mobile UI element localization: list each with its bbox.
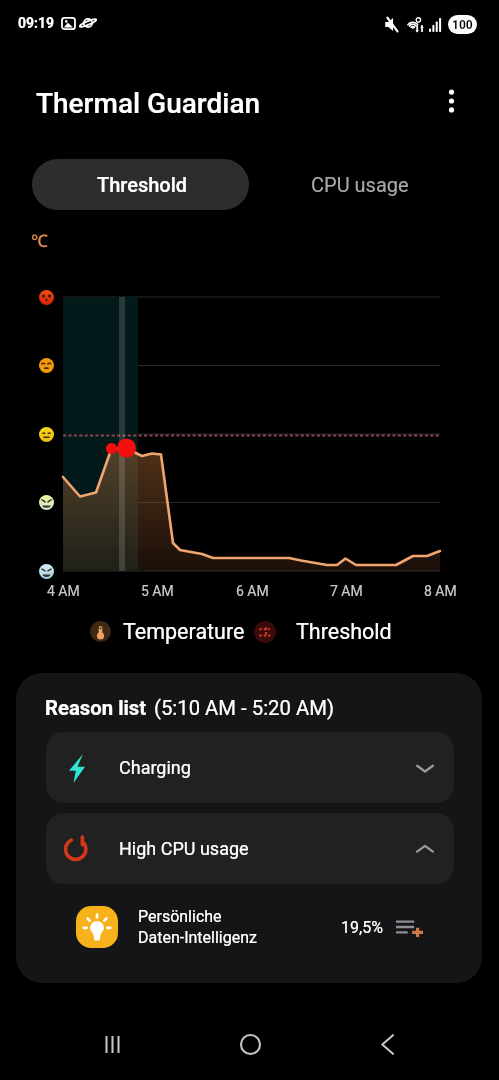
button[interactable]: Charging bbox=[46, 732, 454, 803]
staticText: CPU usage bbox=[311, 173, 409, 196]
staticText: Reason list bbox=[45, 696, 147, 720]
button[interactable]: CPU usage bbox=[251, 159, 468, 210]
button[interactable]: Persönliche bbox=[76, 899, 422, 955]
staticText: Temperature bbox=[123, 619, 245, 644]
staticText: ℃ bbox=[31, 229, 48, 252]
staticText: Persönliche bbox=[138, 907, 222, 926]
staticText: 5 AM bbox=[141, 583, 174, 599]
staticText: 4 AM bbox=[47, 583, 80, 599]
staticText: 7 AM bbox=[330, 583, 363, 599]
staticText: Daten-Intelligenz bbox=[138, 928, 257, 947]
staticText: (5:10 AM - 5:20 AM) bbox=[154, 696, 334, 720]
button[interactable]: High CPU usage bbox=[46, 813, 454, 884]
button[interactable]: Threshold bbox=[32, 159, 249, 210]
button[interactable]: Back bbox=[362, 1019, 412, 1069]
staticText: 6 AM bbox=[236, 583, 269, 599]
button[interactable]: Home bbox=[225, 1019, 275, 1069]
button[interactable]: More options bbox=[433, 83, 469, 119]
staticText: High CPU usage bbox=[119, 838, 249, 859]
staticText: Charging bbox=[119, 757, 191, 778]
button[interactable]: Recents bbox=[87, 1019, 137, 1069]
staticText: 8 AM bbox=[424, 583, 457, 599]
staticText: 19,5% bbox=[341, 918, 383, 937]
staticText: 100 bbox=[452, 18, 473, 32]
staticText: 09:19 bbox=[18, 15, 55, 31]
staticText: Threshold bbox=[296, 619, 392, 644]
staticText: Threshold bbox=[97, 173, 188, 196]
staticText: Thermal Guardian bbox=[36, 87, 261, 120]
